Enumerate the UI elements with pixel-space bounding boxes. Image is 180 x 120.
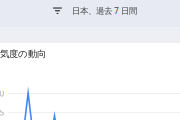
staticText: 75: [0, 107, 4, 118]
staticText: 日本、過去 7 日間: [72, 5, 137, 16]
button[interactable]: 日本、過去 7 日間: [53, 5, 137, 16]
staticText: 人気度の動向: [0, 48, 46, 60]
staticText: 100: [0, 88, 4, 99]
